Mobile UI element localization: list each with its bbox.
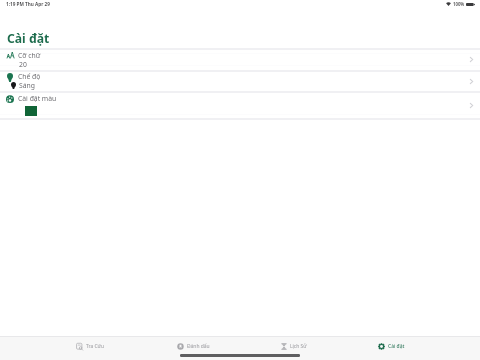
staticText: 20 bbox=[19, 60, 27, 69]
staticText: Cài đặt bbox=[7, 30, 50, 47]
button[interactable]: Lịch Sử bbox=[281, 340, 307, 352]
button[interactable]: Cài đặt bbox=[378, 340, 405, 352]
staticText: Lịch Sử bbox=[290, 343, 307, 350]
button[interactable]: Tra Cứu bbox=[76, 340, 104, 352]
staticText: Chế độ bbox=[18, 72, 41, 81]
button[interactable] bbox=[0, 93, 480, 120]
staticText: Sáng bbox=[19, 81, 35, 90]
staticText: Cỡ chữ bbox=[18, 51, 41, 60]
staticText: Cài đặt bbox=[388, 343, 405, 350]
staticText: 100% bbox=[453, 1, 465, 7]
staticText: Cài đặt màu bbox=[18, 94, 57, 103]
staticText: Thu Apr 29 bbox=[25, 1, 50, 7]
staticText: 1:19 PM bbox=[6, 1, 24, 7]
staticText: Tra Cứu bbox=[86, 343, 104, 350]
button[interactable] bbox=[0, 70, 480, 92]
button[interactable] bbox=[0, 49, 480, 69]
button[interactable]: Đánh dấu bbox=[177, 340, 210, 352]
staticText: Đánh dấu bbox=[187, 343, 210, 350]
